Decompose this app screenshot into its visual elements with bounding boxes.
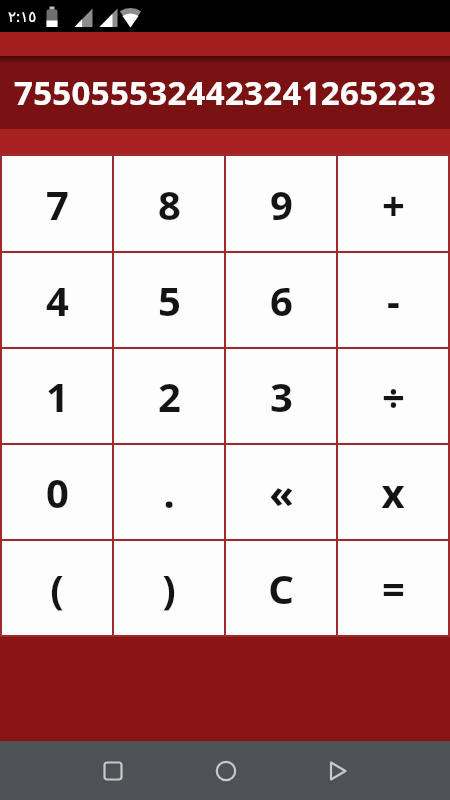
button[interactable]: ÷ — [338, 349, 448, 443]
button[interactable]: + — [338, 156, 448, 251]
button[interactable]: ( — [2, 541, 112, 635]
staticText: 5 — [158, 273, 181, 327]
staticText: C — [268, 561, 294, 615]
staticText: 6 — [270, 273, 293, 327]
staticText: 1 — [46, 369, 69, 423]
button[interactable]: 3 — [226, 349, 336, 443]
staticText: ٢:١٥ — [8, 6, 37, 26]
button[interactable]: . — [114, 445, 224, 539]
button[interactable]: = — [338, 541, 448, 635]
staticText: + — [382, 177, 405, 231]
button[interactable]: 9 — [226, 156, 336, 251]
staticText: 3 — [270, 369, 293, 423]
staticText: x — [381, 465, 405, 519]
staticText: 4 — [46, 273, 69, 327]
button[interactable]: - — [338, 253, 448, 347]
staticText: 8 — [158, 177, 181, 231]
staticText: ÷ — [382, 369, 405, 423]
button[interactable]: C — [226, 541, 336, 635]
button[interactable]: 6 — [226, 253, 336, 347]
staticText: 7550555324423241265223 — [14, 70, 436, 115]
staticText: 7 — [46, 177, 69, 231]
button[interactable]: 4 — [2, 253, 112, 347]
staticText: - — [387, 273, 400, 327]
button[interactable] — [197, 741, 254, 800]
staticText: ( — [50, 561, 64, 615]
button[interactable] — [309, 741, 366, 800]
button[interactable]: ) — [114, 541, 224, 635]
staticText: 9 — [270, 177, 293, 231]
button[interactable]: 1 — [2, 349, 112, 443]
button[interactable]: 7 — [2, 156, 112, 251]
staticText: 2 — [158, 369, 181, 423]
button[interactable]: 2 — [114, 349, 224, 443]
button[interactable] — [84, 741, 141, 800]
button[interactable]: 8 — [114, 156, 224, 251]
staticText: . — [163, 465, 175, 519]
staticText: 0 — [46, 465, 69, 519]
button[interactable]: 5 — [114, 253, 224, 347]
button[interactable]: « — [226, 445, 336, 539]
button[interactable]: x — [338, 445, 448, 539]
staticText: ) — [162, 561, 176, 615]
staticText: « — [269, 465, 294, 519]
button[interactable]: 0 — [2, 445, 112, 539]
staticText: = — [382, 561, 405, 615]
